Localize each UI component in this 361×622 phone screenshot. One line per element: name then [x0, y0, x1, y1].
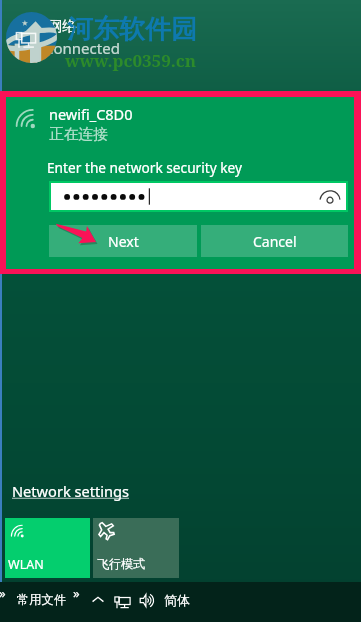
button[interactable]: Network settings — [12, 481, 130, 501]
staticText: 正在连接 — [49, 125, 108, 144]
staticText: WLAN — [8, 556, 44, 573]
button[interactable]: » — [73, 584, 80, 602]
staticText: » — [0, 584, 6, 602]
button[interactable]: WLAN — [5, 518, 90, 578]
staticText: 常用文件 — [17, 592, 67, 607]
staticText: Next — [108, 232, 139, 251]
staticText: 飞行模式 — [97, 556, 145, 571]
other: Network — [14, 30, 38, 49]
button[interactable] — [51, 183, 346, 210]
staticText: 简体 — [164, 592, 190, 608]
button[interactable]: 常用文件 — [17, 592, 67, 607]
button[interactable]: Show hidden icons — [90, 592, 106, 608]
button[interactable]: 飞行模式 — [93, 518, 179, 578]
staticText: Network settings — [12, 481, 130, 501]
button[interactable]: 简体 — [164, 592, 190, 608]
button[interactable]: Next — [49, 225, 197, 257]
staticText: Cancel — [253, 232, 297, 251]
button[interactable]: Network — [113, 595, 132, 609]
button[interactable]: Cancel — [201, 225, 348, 257]
staticText: Connected — [44, 38, 120, 58]
button[interactable]: » — [0, 584, 6, 602]
button[interactable]: Volume — [139, 594, 154, 607]
staticText: Enter the network security key — [47, 158, 243, 177]
staticText: 河东软件园 — [67, 13, 197, 46]
staticText: 网络 — [48, 17, 77, 35]
staticText: www.pc0359.cn — [65, 49, 197, 72]
staticText: newifi_C8D0 — [49, 104, 133, 124]
staticText: » — [73, 584, 80, 602]
